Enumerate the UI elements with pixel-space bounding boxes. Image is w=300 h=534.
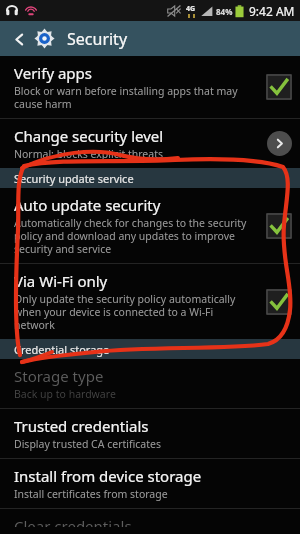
staticText: Clear credentials: [14, 516, 132, 527]
staticText: 9:42 AM: [249, 3, 295, 19]
button[interactable]: Toggle setting: [266, 289, 292, 315]
staticText: Install from device storage: [14, 466, 202, 486]
staticText: Normal: blocks explicit threats: [14, 147, 164, 161]
staticText: Security: [67, 28, 128, 50]
button[interactable]: Via Wi-Fi only: [0, 264, 300, 339]
staticText: Block or warn before installing apps tha…: [14, 84, 238, 111]
button[interactable]: Change security level: [0, 119, 300, 168]
button[interactable]: Install from device storage: [0, 459, 300, 508]
staticText: Back up to hardware: [14, 387, 116, 401]
staticText: Trusted credentials: [14, 416, 149, 436]
staticText: Security update service: [14, 171, 134, 186]
button[interactable]: Trusted credentials: [0, 409, 300, 458]
staticText: Automatically check for changes to the s…: [14, 216, 247, 256]
staticText: Storage type: [14, 366, 104, 386]
button[interactable]: Auto update security: [0, 188, 300, 263]
button[interactable]: Storage type: [0, 359, 300, 408]
button[interactable]: Verify apps: [0, 56, 300, 118]
staticText: Install certificates from storage: [14, 487, 168, 501]
staticText: 4G: [186, 4, 196, 14]
button[interactable]: Toggle setting: [266, 74, 292, 100]
staticText: Change security level: [14, 126, 164, 146]
button[interactable]: Clear credentials: [0, 509, 300, 534]
button[interactable]: Back: [0, 21, 300, 56]
staticText: Credential storage: [14, 342, 110, 357]
staticText: Verify apps: [14, 63, 92, 83]
button[interactable]: Change security level: [267, 131, 292, 156]
staticText: Only update the security policy automati…: [14, 292, 236, 332]
staticText: Display trusted CA certificates: [14, 437, 161, 451]
staticText: Via Wi-Fi only: [14, 271, 108, 291]
staticText: Auto update security: [14, 195, 161, 215]
button[interactable]: Toggle setting: [266, 213, 292, 239]
button[interactable]: Back: [8, 28, 30, 50]
staticText: 84%: [216, 6, 233, 17]
